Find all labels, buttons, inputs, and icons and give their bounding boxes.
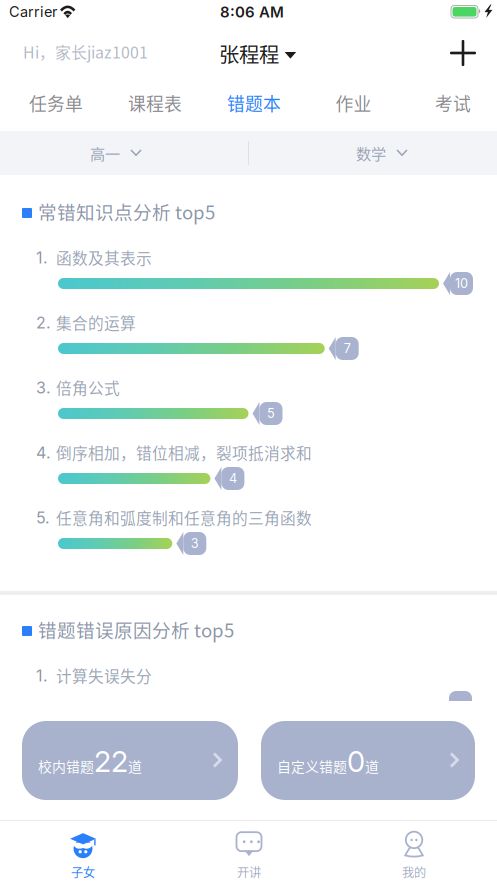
staticText: 2.: [36, 313, 51, 332]
staticText: 倍角公式: [56, 376, 120, 399]
staticText: 4: [229, 471, 237, 486]
staticText: 5: [267, 406, 275, 421]
button[interactable]: 错题本: [208, 86, 300, 120]
staticText: 我的: [402, 863, 426, 881]
staticText: 1.: [36, 248, 48, 267]
staticText: 0: [347, 744, 365, 779]
staticText: Hi，家长jiaz1001: [23, 40, 148, 63]
staticText: 8:06 AM: [220, 3, 284, 21]
staticText: 倒序相加，错位相减，裂项抵消求和: [56, 441, 312, 464]
staticText: 高一: [90, 142, 120, 164]
staticText: 任务单: [29, 90, 83, 116]
staticText: 错题本: [227, 90, 281, 116]
staticText: 错题错误原因分析 top5: [38, 616, 234, 643]
button[interactable]: 高一: [90, 131, 141, 175]
staticText: 自定义错题: [277, 756, 347, 776]
button[interactable]: 任务单: [10, 86, 102, 120]
staticText: 3: [191, 536, 199, 551]
staticText: 集合的运算: [56, 311, 136, 334]
button[interactable]: 子女: [33, 830, 133, 882]
staticText: 作业: [335, 90, 371, 116]
button[interactable]: 张程程: [211, 29, 304, 64]
staticText: 计算失误失分: [56, 664, 152, 687]
staticText: 张程程: [219, 39, 279, 68]
button[interactable]: 我的: [364, 830, 464, 882]
button[interactable]: 课程表: [109, 86, 201, 120]
staticText: 1.: [36, 666, 48, 685]
staticText: 常错知识点分析 top5: [38, 198, 215, 225]
staticText: 道: [128, 756, 142, 776]
button[interactable]: 开讲: [199, 830, 299, 882]
staticText: 道: [365, 756, 379, 776]
staticText: 数学: [356, 142, 386, 164]
staticText: Carrier: [9, 3, 57, 20]
staticText: 开讲: [237, 863, 261, 881]
button[interactable]: 数学: [356, 131, 407, 175]
staticText: 校内错题: [38, 756, 94, 776]
staticText: 4.: [36, 443, 51, 462]
button[interactable]: 校内错题: [22, 721, 238, 800]
staticText: 函数及其表示: [56, 246, 152, 269]
staticText: 考试: [435, 90, 471, 116]
staticText: 课程表: [128, 90, 182, 116]
staticText: 任意角和弧度制和任意角的三角函数: [56, 506, 312, 529]
staticText: 22: [94, 744, 128, 779]
staticText: 7: [344, 341, 351, 356]
button[interactable]: 考试: [407, 86, 497, 120]
staticText: 子女: [71, 863, 95, 881]
staticText: 3.: [36, 378, 51, 397]
staticText: 10: [455, 276, 468, 291]
staticText: 5.: [36, 508, 50, 527]
button[interactable]: 自定义错题: [261, 721, 475, 800]
button[interactable]: Add: [440, 30, 486, 76]
button[interactable]: 作业: [307, 86, 399, 120]
